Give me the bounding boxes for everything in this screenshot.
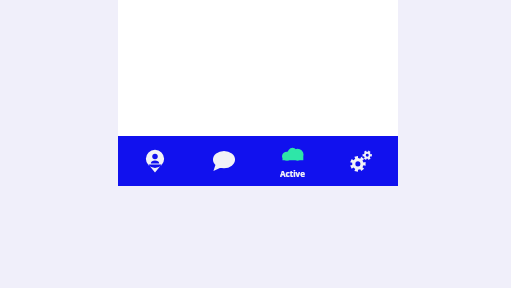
button[interactable]: Settings	[330, 136, 392, 186]
button[interactable]: Active status	[261, 136, 323, 186]
staticText: Active	[280, 168, 305, 179]
button[interactable]: Profile location	[124, 136, 186, 186]
button[interactable]: Messages	[193, 136, 255, 186]
